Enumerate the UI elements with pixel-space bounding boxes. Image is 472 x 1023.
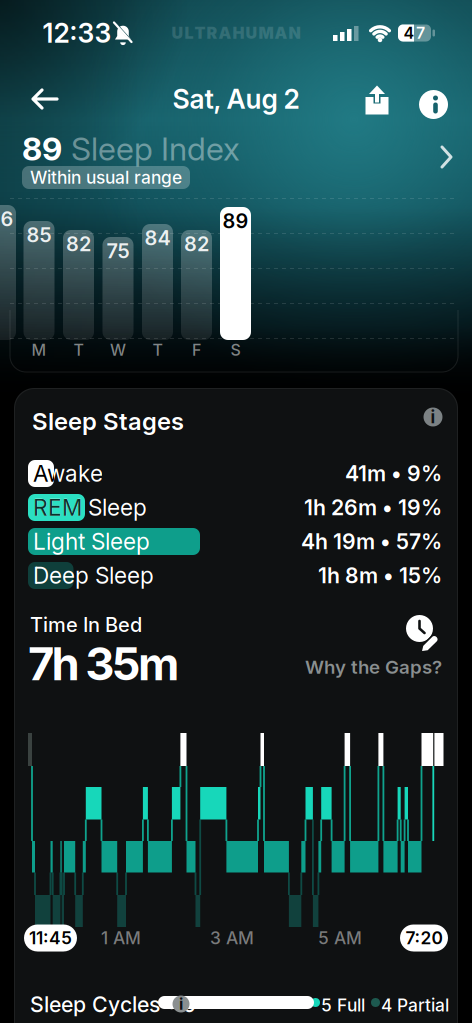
staticText: 12:33	[42, 17, 111, 49]
staticText: 82	[66, 232, 91, 256]
staticText: Sleep Index	[71, 130, 240, 168]
staticText: 84	[144, 226, 170, 250]
staticText: 41m • 9%	[345, 461, 442, 486]
button[interactable]: Edit time in bed	[398, 609, 444, 655]
button[interactable]: Info	[408, 79, 448, 119]
staticText: 1 AM	[101, 928, 141, 948]
staticText: Within usual range	[30, 167, 182, 188]
staticText: 7h 35m	[28, 637, 179, 690]
staticText: Awake	[33, 460, 103, 487]
staticText: i	[179, 995, 183, 1013]
button[interactable]: Sleep stages info	[420, 404, 446, 430]
button[interactable]: Back	[25, 79, 65, 119]
staticText: 7	[416, 24, 425, 42]
staticText: 11:45	[29, 928, 72, 948]
staticText: REM Sleep	[33, 494, 147, 521]
staticText: Awake	[33, 460, 103, 487]
staticText: REM Sleep	[33, 494, 147, 521]
staticText: i	[430, 407, 435, 427]
staticText: T	[152, 341, 162, 359]
button[interactable]: Why the Gaps?	[305, 656, 442, 678]
staticText: F	[192, 341, 201, 359]
staticText: 89	[22, 130, 62, 168]
staticText: 5 AM	[318, 928, 362, 948]
staticText: 4 Partial	[381, 995, 449, 1015]
staticText: 85	[26, 223, 51, 247]
staticText: Why the Gaps?	[305, 656, 442, 678]
staticText: M	[31, 341, 46, 359]
button[interactable]: Sleep cycles info	[169, 992, 193, 1016]
staticText: 82	[184, 232, 209, 256]
staticText: 6	[0, 207, 13, 231]
staticText: T	[73, 341, 83, 359]
staticText: W	[110, 341, 126, 359]
staticText: 5 Full	[321, 995, 365, 1015]
staticText: Deep Sleep	[33, 562, 154, 589]
button[interactable]: Share	[357, 79, 397, 119]
staticText: 1h 8m • 15%	[318, 563, 442, 588]
staticText: 3 AM	[210, 928, 254, 948]
button[interactable]: Sleep Index details	[434, 142, 460, 172]
staticText: Sleep Cycles • 9	[30, 992, 196, 1017]
staticText: 75	[106, 239, 129, 263]
staticText: Light Sleep	[33, 528, 150, 555]
staticText: S	[230, 341, 240, 359]
staticText: 4h 19m • 57%	[301, 529, 442, 554]
staticText: Sleep Stages	[32, 407, 184, 435]
staticText: 7:20	[405, 928, 442, 948]
staticText: Time In Bed	[30, 613, 142, 637]
staticText: 4	[403, 24, 414, 42]
staticText: U L T R A H U M A N	[171, 24, 300, 42]
staticText: 1h 26m • 19%	[304, 495, 442, 520]
staticText: Sat, Aug 2	[172, 83, 299, 115]
staticText: 89	[222, 209, 248, 233]
